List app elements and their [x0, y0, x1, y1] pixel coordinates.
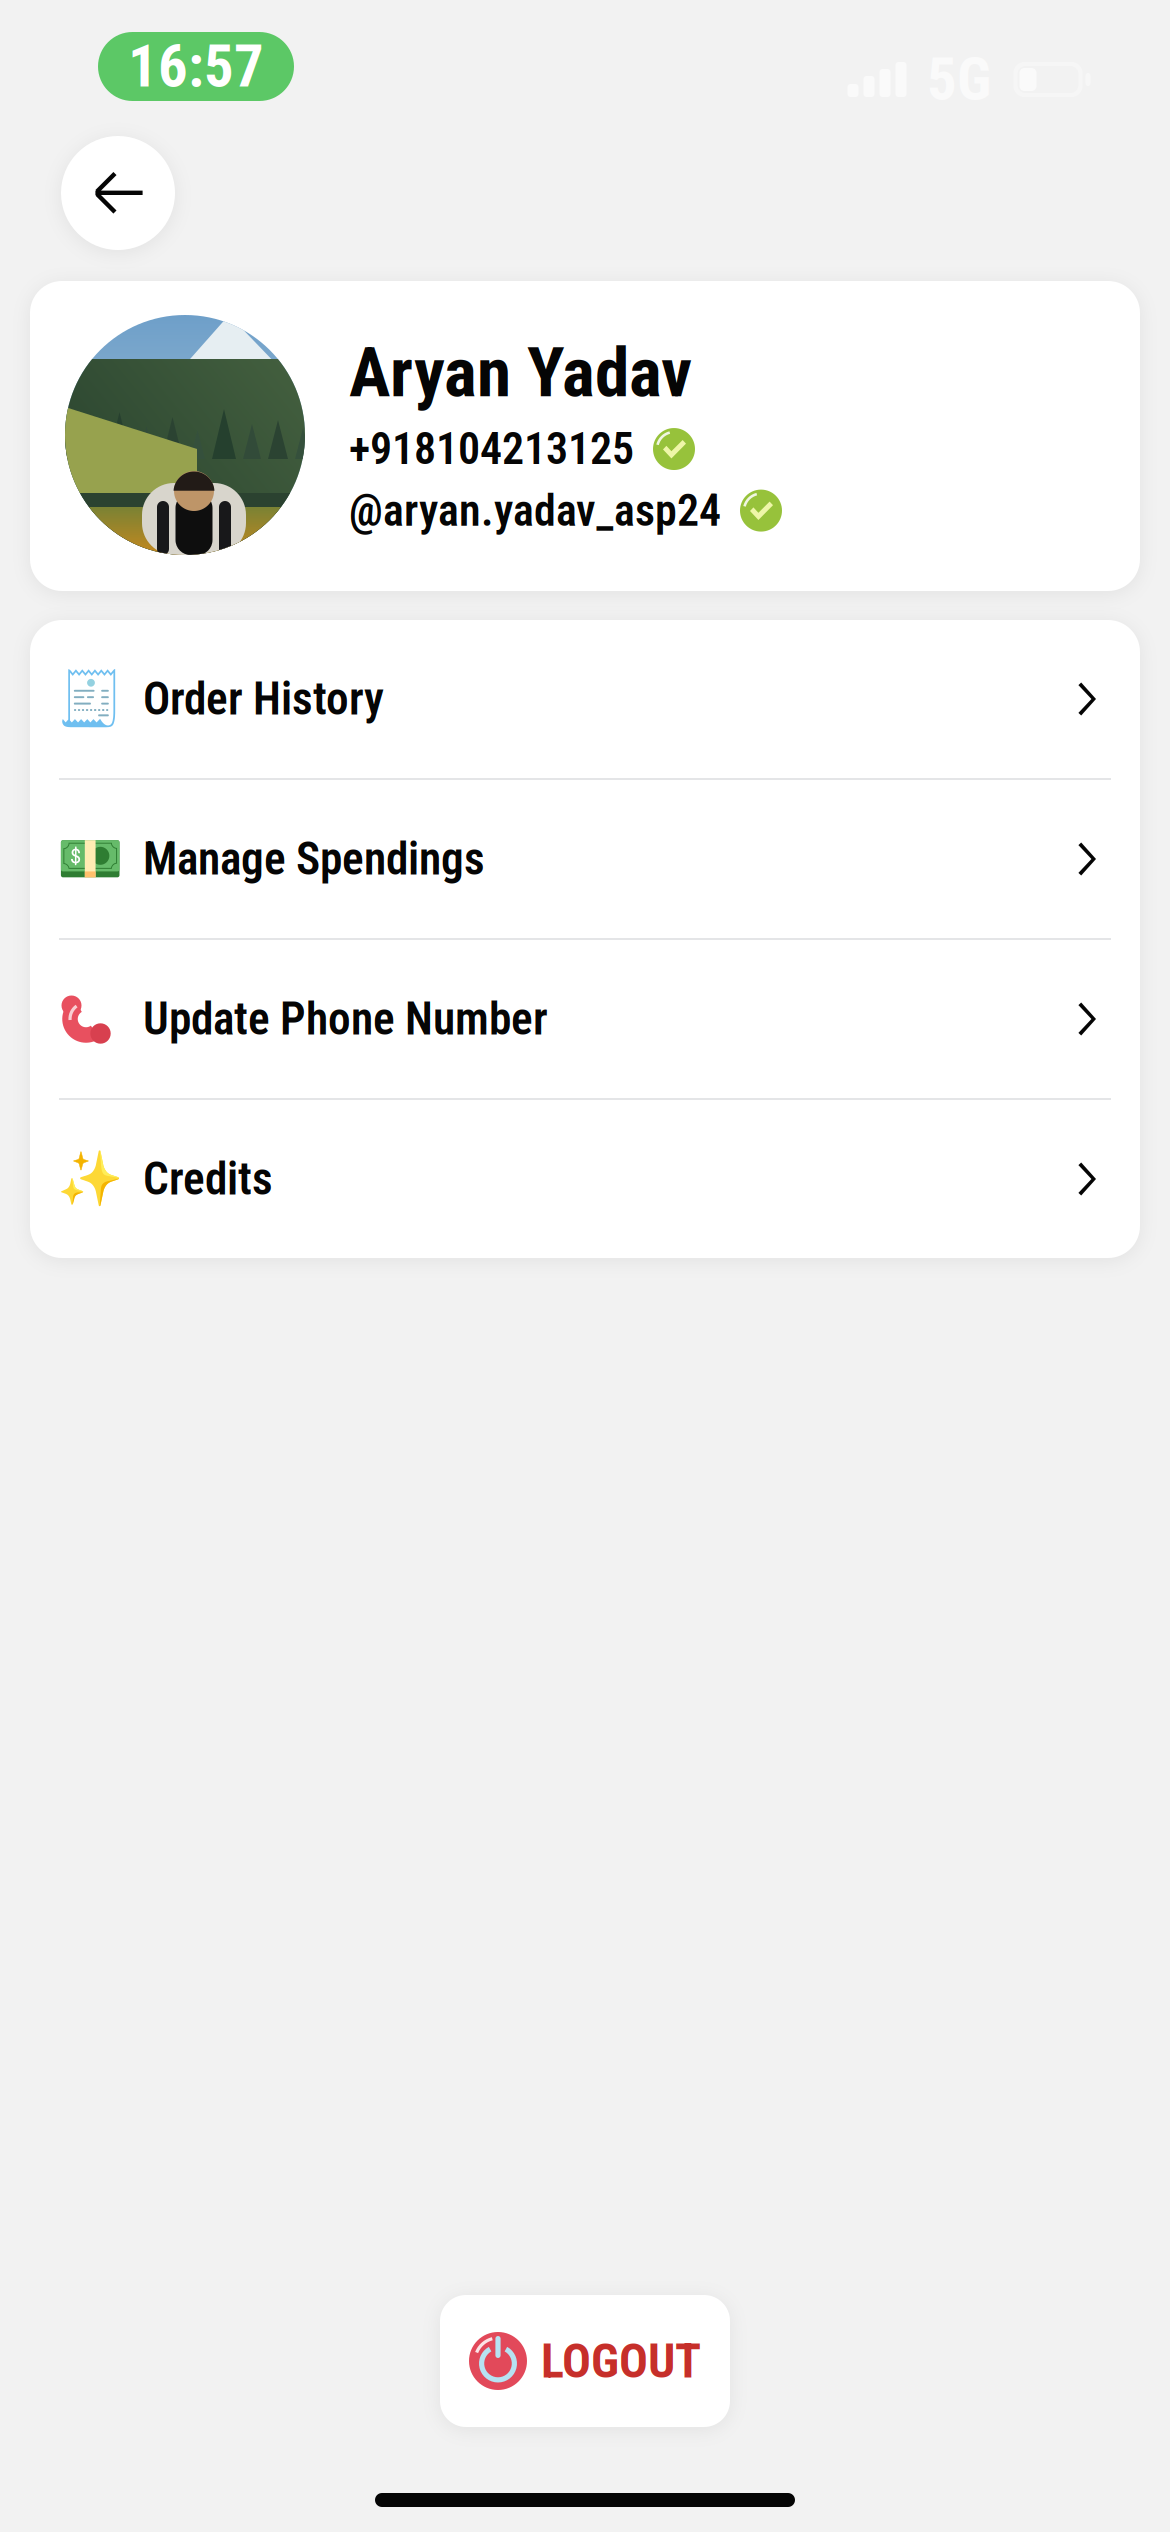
staticText: 💵 [57, 828, 123, 889]
staticText: +918104213125 [349, 423, 634, 475]
staticText: Aryan Yadav [349, 332, 692, 413]
button[interactable]: ✨ [30, 1100, 1140, 1258]
staticText: ✨ [57, 1148, 123, 1209]
button[interactable]: LOGOUT [440, 2295, 730, 2427]
staticText: Credits [143, 1152, 273, 1205]
staticText: 16:57 [128, 32, 264, 101]
staticText: LOGOUT [541, 2333, 701, 2389]
staticText: Manage Spendings [143, 832, 485, 885]
staticText: @aryan.yadav_asp24 [349, 485, 721, 536]
button[interactable]: 💵 [30, 780, 1140, 938]
staticText: Update Phone Number [143, 992, 548, 1045]
button[interactable]: Update Phone Number [30, 940, 1140, 1098]
button[interactable]: Back [61, 136, 175, 250]
staticText: Order History [143, 672, 384, 725]
staticText: 🧾 [57, 668, 123, 729]
staticText: 5G [927, 45, 991, 114]
button[interactable]: 🧾 [30, 620, 1140, 778]
